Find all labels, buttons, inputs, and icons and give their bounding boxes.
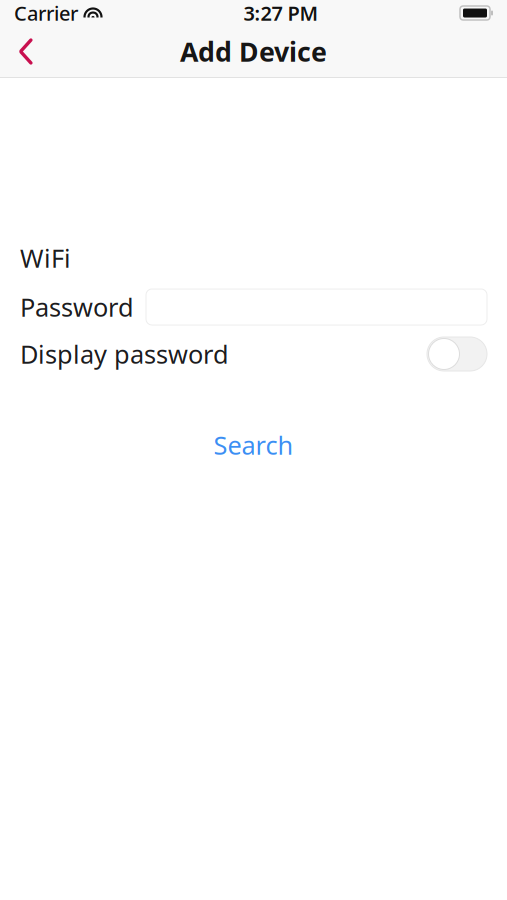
- staticText: WiFi: [20, 241, 71, 275]
- staticText: Display password: [20, 337, 229, 371]
- button[interactable]: Back: [0, 29, 52, 73]
- staticText: Password: [20, 290, 134, 324]
- staticText: Add Device: [180, 34, 327, 69]
- button[interactable]: Display password: [427, 337, 487, 371]
- staticText: Carrier: [14, 0, 78, 26]
- staticText: Search: [213, 428, 293, 462]
- button[interactable]: Search: [0, 420, 507, 470]
- staticText: 3:27 PM: [243, 0, 318, 26]
